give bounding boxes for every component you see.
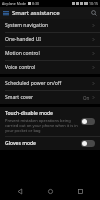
button[interactable]: Home	[40, 182, 60, 200]
staticText: Scheduled power on/off	[5, 80, 92, 87]
button[interactable]: Back	[10, 182, 30, 200]
button[interactable]: Toggle	[81, 118, 95, 125]
staticText: Smart cover	[5, 94, 83, 101]
staticText: One-handed UI	[5, 36, 92, 43]
staticText: Prevent mistaken operations being carrie…	[5, 118, 78, 133]
staticText: 10:15	[89, 1, 98, 6]
button[interactable]: Voice control	[0, 61, 100, 74]
staticText: On	[83, 95, 90, 101]
staticText: Airplane Mode	[2, 1, 27, 6]
button[interactable]: System navigation	[0, 19, 100, 32]
staticText: Motion control	[5, 50, 92, 57]
button[interactable]: Touch-disable mode	[0, 107, 100, 136]
staticText: Smart assistance	[12, 9, 88, 17]
staticText: Touch-disable mode	[5, 110, 53, 117]
button[interactable]: Recents	[70, 182, 90, 200]
button[interactable]: Toggle	[81, 140, 95, 147]
button[interactable]: Motion control	[0, 47, 100, 60]
button[interactable]: Smart cover	[0, 91, 100, 104]
button[interactable]: Search	[88, 7, 100, 19]
staticText: System navigation	[5, 22, 92, 29]
staticText: 8:30	[32, 1, 39, 6]
button[interactable]: Menu	[0, 7, 12, 19]
button[interactable]: Scheduled power on/off	[0, 77, 100, 90]
button[interactable]: One-handed UI	[0, 33, 100, 46]
button[interactable]: Gloves mode	[0, 137, 100, 150]
staticText: Gloves mode	[5, 140, 36, 147]
staticText: Voice control	[5, 64, 92, 71]
